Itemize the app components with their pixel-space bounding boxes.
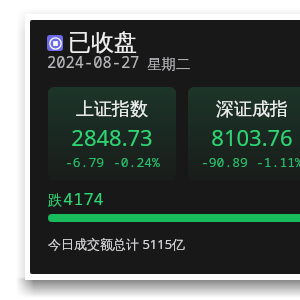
- button[interactable]: 深证成指: [188, 87, 300, 180]
- button[interactable]: 上证指数: [48, 87, 176, 180]
- staticText: 4174: [63, 187, 104, 210]
- staticText: -1.11%: [256, 153, 300, 171]
- staticText: 深证成指: [216, 98, 288, 121]
- staticText: -6.79: [65, 153, 105, 171]
- staticText: 已收盘: [68, 28, 137, 57]
- staticText: 2848.73: [71, 122, 153, 152]
- staticText: -90.89: [201, 153, 248, 171]
- staticText: 8103.76: [211, 122, 293, 152]
- staticText: 今日成交额总计 5115亿: [48, 235, 186, 253]
- staticText: 2024-08-27: [47, 52, 140, 73]
- other: Market status: [47, 35, 63, 51]
- staticText: 跌: [48, 192, 62, 210]
- staticText: 星期二: [147, 55, 191, 73]
- staticText: -0.24%: [113, 153, 160, 171]
- staticText: 上证指数: [76, 98, 148, 121]
